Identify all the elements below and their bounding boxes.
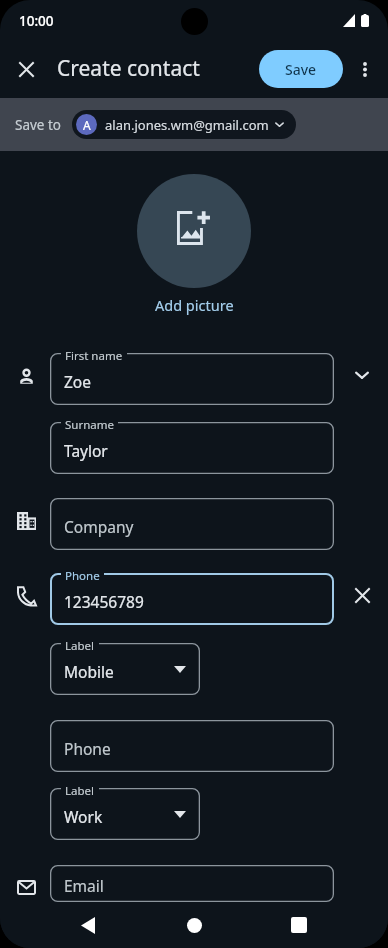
staticText: Zoe: [64, 371, 91, 392]
button[interactable]: 123456789: [50, 573, 334, 625]
staticText: Add picture: [155, 295, 234, 315]
staticText: Surname: [65, 417, 114, 433]
button[interactable]: Mobile: [50, 643, 200, 695]
staticText: A: [83, 117, 91, 133]
staticText: Label: [65, 783, 95, 799]
staticText: Company: [64, 516, 134, 537]
staticText: Mobile: [64, 661, 114, 682]
staticText: Create contact: [57, 54, 200, 83]
button[interactable]: Back: [64, 902, 112, 948]
staticText: Taylor: [64, 440, 108, 461]
staticText: Phone: [64, 738, 111, 759]
button[interactable]: Expand: [335, 349, 388, 401]
button[interactable]: Work: [50, 788, 200, 840]
button[interactable]: Clear: [335, 569, 388, 621]
staticText: alan.jones.wm@gmail.com: [105, 116, 269, 134]
staticText: Phone: [65, 568, 100, 584]
button[interactable]: Home: [170, 902, 218, 948]
staticText: 10:00: [19, 12, 54, 30]
staticText: Label: [65, 638, 95, 654]
button[interactable]: Company: [50, 498, 334, 550]
staticText: 123456789: [64, 591, 144, 612]
staticText: Save: [285, 60, 317, 79]
button[interactable]: Close: [0, 44, 50, 94]
button[interactable]: Zoe: [50, 353, 334, 405]
button[interactable]: Phone: [50, 720, 334, 772]
button[interactable]: Save: [259, 50, 343, 88]
button[interactable]: Email: [50, 865, 334, 902]
button[interactable]: A: [72, 110, 296, 139]
staticText: First name: [65, 348, 123, 364]
button[interactable]: Taylor: [50, 422, 334, 474]
button[interactable]: Add picture: [137, 174, 251, 288]
staticText: Work: [64, 806, 103, 827]
button[interactable]: More options: [343, 45, 388, 93]
button[interactable]: Recents: [275, 902, 323, 948]
staticText: Email: [64, 875, 104, 896]
button[interactable]: Add picture: [151, 293, 238, 317]
staticText: Save to: [15, 116, 62, 134]
